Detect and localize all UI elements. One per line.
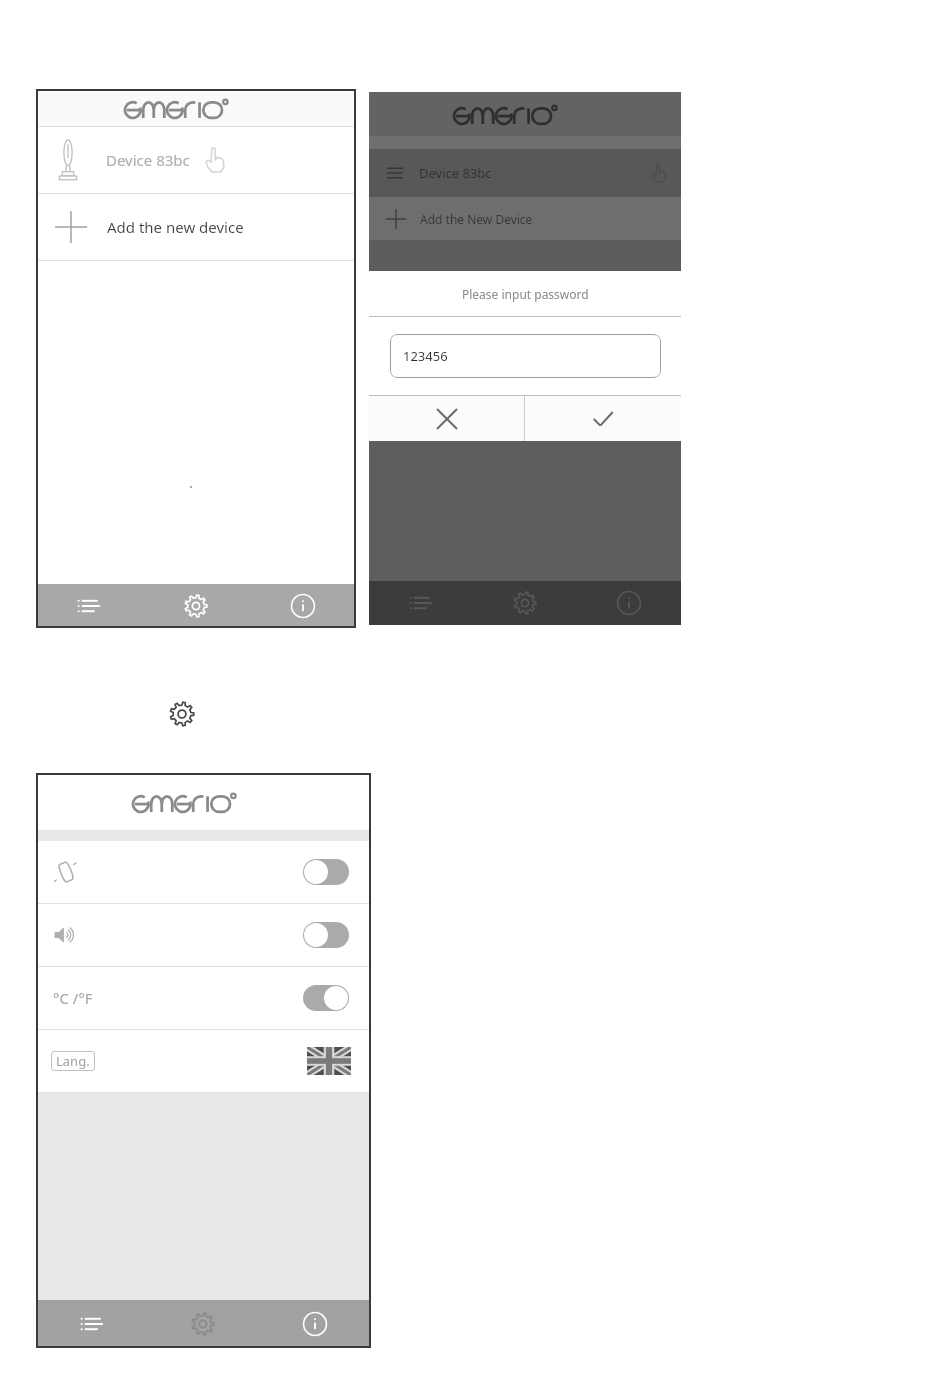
button[interactable]: Info xyxy=(577,581,681,625)
button[interactable]: Device list xyxy=(36,1300,147,1348)
button[interactable]: Device list xyxy=(36,584,142,628)
button[interactable]: Info xyxy=(249,584,356,628)
button[interactable]: °C /°F xyxy=(36,967,371,1029)
button[interactable]: Settings xyxy=(142,584,249,628)
staticText: Device 83bc xyxy=(419,164,492,182)
staticText: Add the New Device xyxy=(420,211,533,227)
button[interactable]: Settings xyxy=(473,581,577,625)
button[interactable]: Add the new device xyxy=(36,194,356,260)
button[interactable]: Device list xyxy=(369,581,473,625)
button[interactable]: 123456 xyxy=(390,334,661,378)
button[interactable]: Confirm xyxy=(525,396,681,441)
button[interactable]: Toggle off xyxy=(36,904,371,966)
staticText: Lang. xyxy=(56,1052,90,1070)
button[interactable]: Add the New Device xyxy=(369,197,681,240)
button[interactable]: Toggle off xyxy=(36,841,371,903)
button[interactable]: Settings xyxy=(166,698,198,730)
button[interactable]: Cancel xyxy=(369,396,524,441)
button[interactable]: Info xyxy=(259,1300,371,1348)
button[interactable]: Settings xyxy=(147,1300,259,1348)
button[interactable]: Device 83bc xyxy=(369,149,681,197)
button[interactable]: Toggle off xyxy=(303,859,349,885)
button[interactable]: Toggle off xyxy=(303,922,349,948)
button[interactable]: Lang. xyxy=(36,1030,371,1092)
staticText: °C /°F xyxy=(53,988,93,1008)
staticText: 123456 xyxy=(403,347,448,365)
staticText: Please input password xyxy=(462,286,589,302)
button[interactable]: Toggle on xyxy=(303,985,349,1011)
staticText: Add the new device xyxy=(107,217,244,237)
staticText: Device 83bc xyxy=(106,150,190,170)
button[interactable]: Device 83bc xyxy=(36,127,356,193)
